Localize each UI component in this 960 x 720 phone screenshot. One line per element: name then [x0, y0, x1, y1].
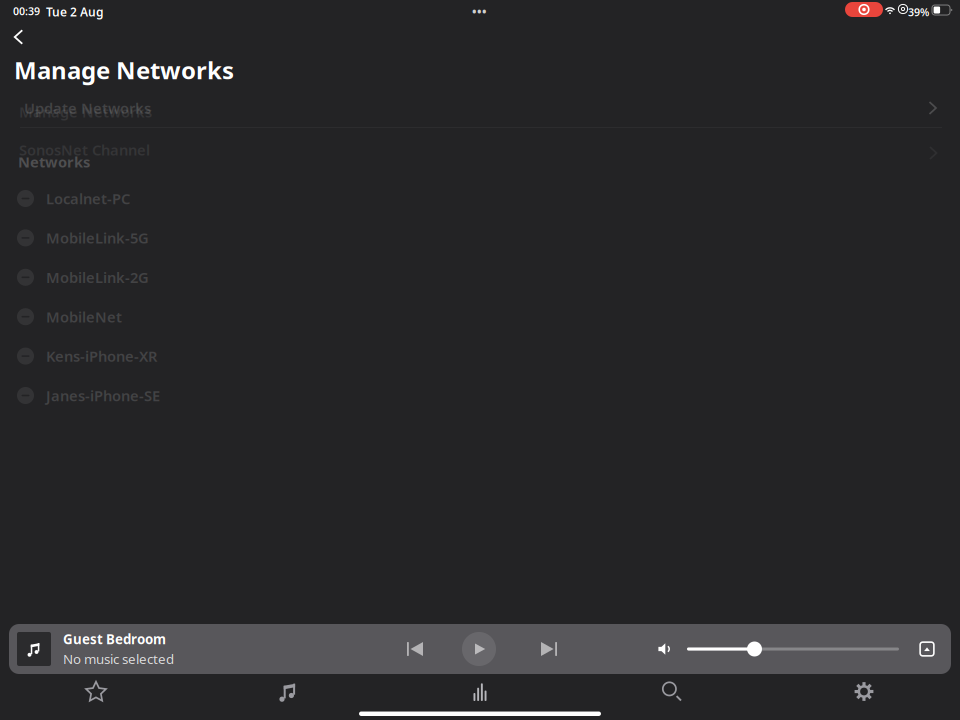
staticText: Guest Bedroom: [63, 630, 166, 648]
staticText: Update Networks: [24, 98, 151, 118]
button[interactable]: AirPlay: [912, 624, 942, 674]
staticText: MobileNet: [46, 307, 122, 326]
button[interactable]: Back: [5, 26, 31, 48]
staticText: Manage Networks: [14, 54, 234, 86]
staticText: Tue 2 Aug: [46, 4, 104, 20]
button[interactable]: Next track: [529, 624, 569, 674]
staticText: 39%: [908, 5, 929, 19]
button[interactable]: Guest Bedroom: [9, 624, 379, 674]
staticText: Manage Networks: [19, 102, 152, 121]
staticText: Networks: [18, 152, 90, 171]
button[interactable]: SonosNet Channel: [19, 140, 150, 159]
staticText: Localnet-PC: [46, 189, 130, 208]
button[interactable]: MobileLink-2G: [0, 268, 960, 287]
button[interactable]: Search: [576, 674, 768, 708]
button[interactable]: Kens-iPhone-XR: [0, 347, 960, 366]
staticText: MobileLink-5G: [46, 228, 149, 248]
button[interactable]: Manage Networks: [19, 102, 152, 121]
staticText: SonosNet Channel: [19, 140, 150, 159]
staticText: Kens-iPhone-XR: [46, 346, 157, 366]
button[interactable]: Favourites: [0, 674, 192, 708]
button[interactable]: MobileLink-5G: [0, 228, 960, 247]
button[interactable]: Localnet-PC: [0, 189, 960, 208]
button[interactable]: Rooms: [384, 674, 576, 708]
button[interactable]: Update Networks: [0, 94, 960, 122]
staticText: •••: [472, 4, 487, 20]
button[interactable]: Browse music: [192, 674, 384, 708]
button[interactable]: Settings: [768, 674, 960, 708]
button[interactable]: Janes-iPhone-SE: [0, 386, 960, 405]
button[interactable]: Previous track: [395, 624, 435, 674]
button[interactable]: Play: [452, 624, 506, 674]
staticText: MobileLink-2G: [46, 268, 149, 287]
button[interactable]: Mute: [650, 624, 680, 674]
staticText: 00:39: [13, 4, 40, 18]
staticText: No music selected: [63, 650, 174, 668]
staticText: Janes-iPhone-SE: [46, 386, 160, 405]
button[interactable]: MobileNet: [0, 307, 960, 326]
